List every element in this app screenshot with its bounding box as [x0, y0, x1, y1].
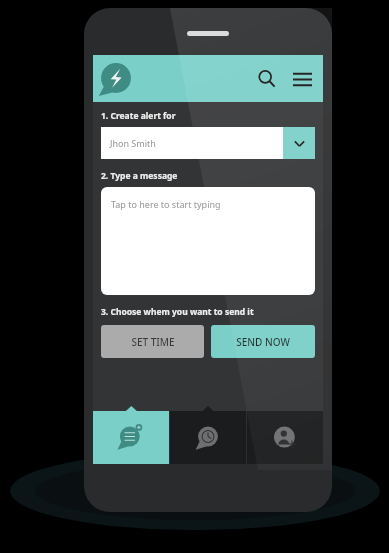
other: Open contact list [283, 127, 315, 159]
button[interactable]: Tap to here to start typing [101, 187, 315, 295]
staticText: 1. Create alert for [101, 110, 176, 122]
button[interactable]: SEND NOW [211, 325, 315, 358]
button[interactable]: Search [251, 63, 283, 95]
staticText: Tap to here to start typing [111, 198, 221, 210]
staticText: Jhon Smith [110, 137, 156, 149]
button[interactable]: Menu [285, 62, 319, 96]
staticText: 2. Type a message [101, 170, 178, 182]
button[interactable]: Jhon Smith [101, 127, 315, 159]
button[interactable]: Add contact [247, 411, 323, 464]
button[interactable]: New message [93, 411, 169, 464]
staticText: 3. Choose whem you want to send it [101, 306, 254, 318]
other: App logo [99, 62, 133, 96]
button[interactable]: SET TIME [101, 325, 204, 358]
staticText: SET TIME [131, 335, 175, 349]
staticText: SEND NOW [236, 335, 290, 349]
button[interactable]: Scheduled [170, 411, 246, 464]
